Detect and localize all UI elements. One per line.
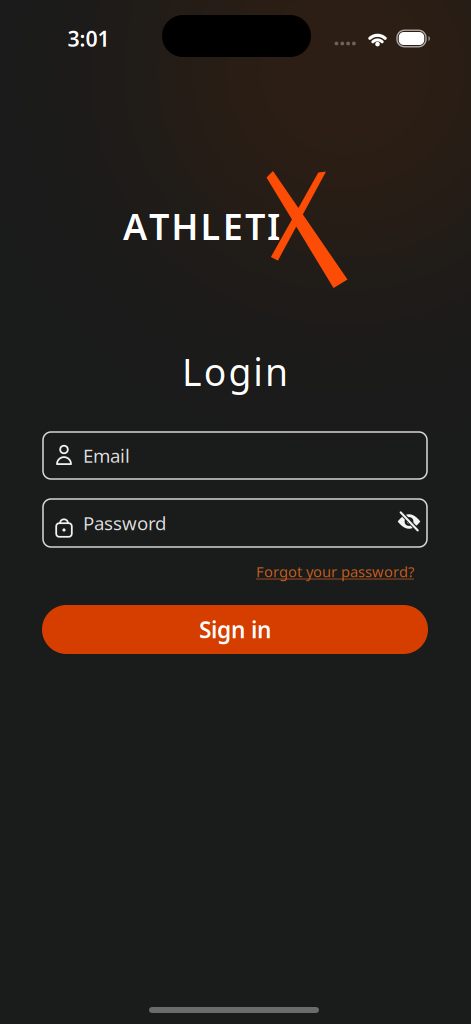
staticText: 3:01 <box>67 24 109 53</box>
staticText: Password <box>83 511 166 535</box>
staticText: Login <box>182 347 288 396</box>
button[interactable]: Sign in <box>42 605 428 654</box>
staticText: T <box>149 202 169 250</box>
button[interactable]: Email <box>43 432 427 479</box>
staticText: H <box>171 202 198 250</box>
staticText: I <box>267 202 280 250</box>
staticText: L <box>200 202 220 250</box>
button[interactable]: Forgot your password? <box>256 562 414 581</box>
staticText: E <box>223 202 243 250</box>
staticText: Forgot your password? <box>256 562 414 581</box>
staticText: T <box>245 202 265 250</box>
staticText: Sign in <box>199 614 271 644</box>
staticText: Email <box>83 443 130 468</box>
button[interactable]: Password <box>43 499 427 547</box>
staticText: A <box>123 202 147 250</box>
button[interactable]: Show password <box>397 511 420 532</box>
